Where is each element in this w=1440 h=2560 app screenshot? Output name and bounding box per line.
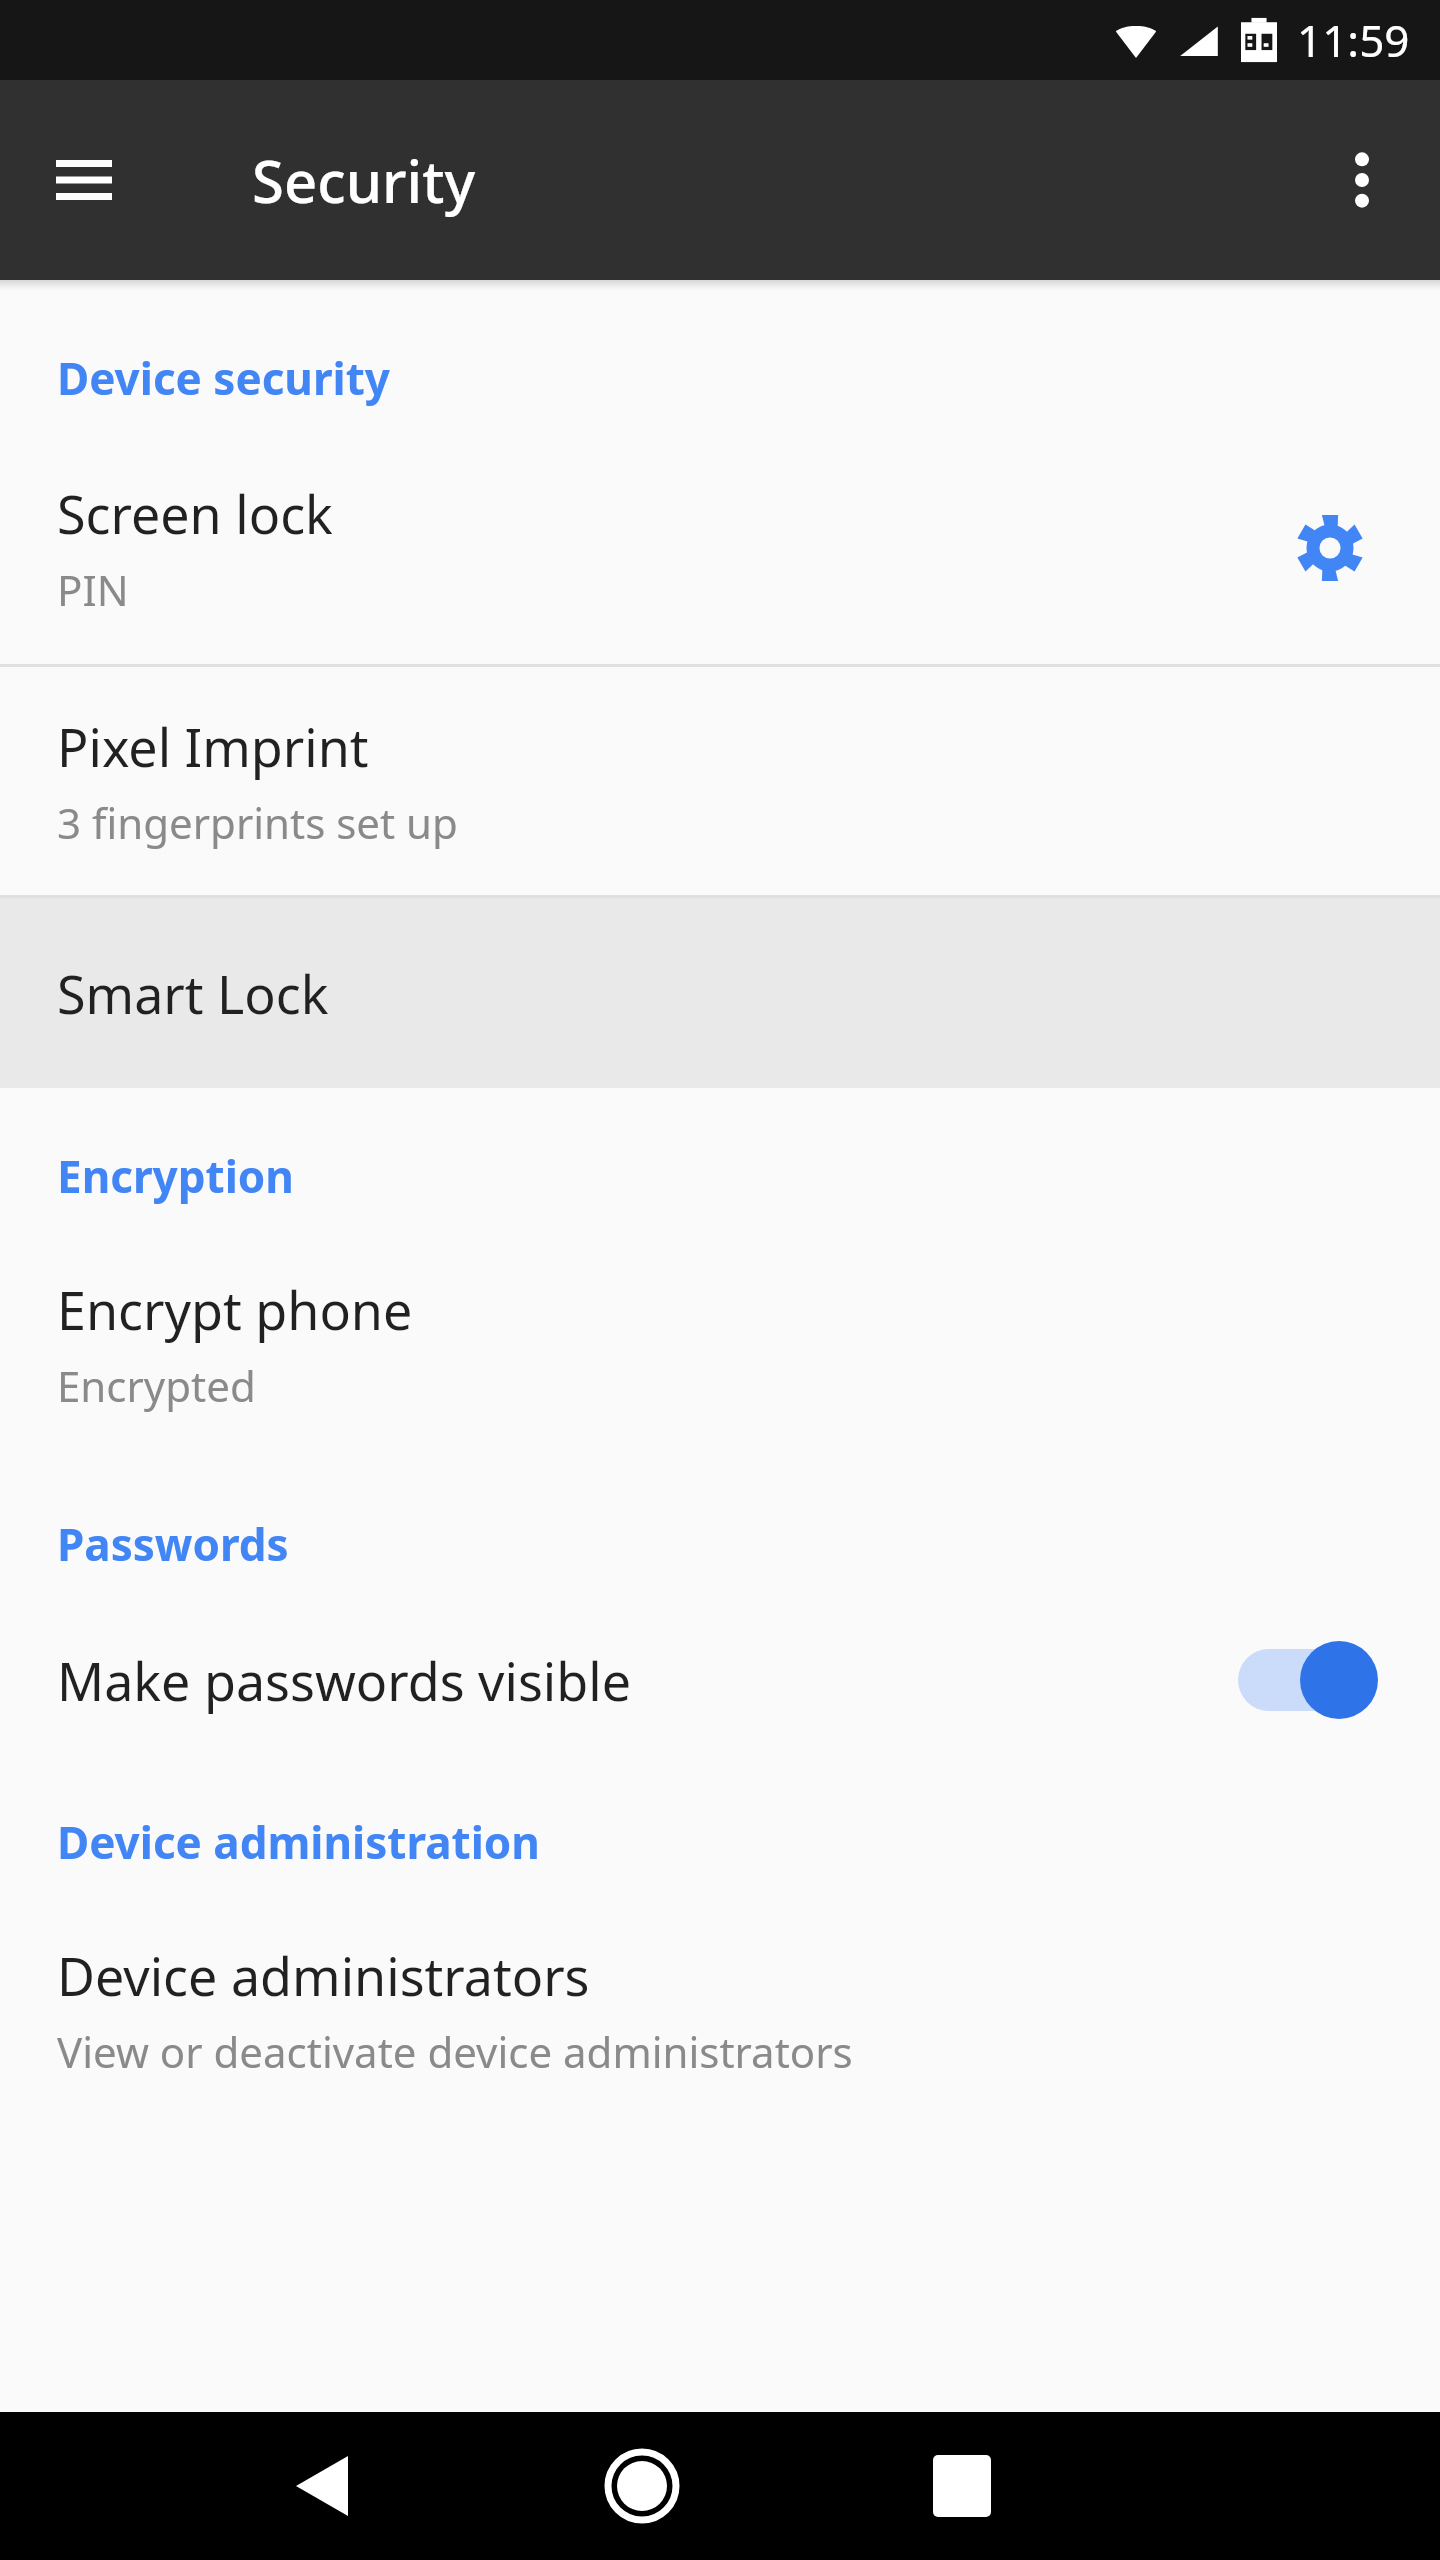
button[interactable]: Device administrators <box>0 1896 1440 2124</box>
button[interactable]: Encrypt phone <box>0 1230 1440 1458</box>
staticText: Encrypted <box>57 1357 256 1414</box>
button[interactable]: Smart Lock <box>0 898 1440 1088</box>
staticText: View or deactivate device administrators <box>57 2023 853 2080</box>
staticText: Smart Lock <box>57 958 329 1029</box>
staticText: Make passwords visible <box>57 1645 631 1716</box>
staticText: Screen lock <box>57 478 333 549</box>
staticText: Encrypt phone <box>57 1274 413 1345</box>
button[interactable]: Open navigation drawer <box>36 132 132 228</box>
button[interactable]: Make passwords visible toggle <box>1238 1635 1378 1725</box>
button[interactable]: Make passwords visible <box>0 1598 1440 1762</box>
staticText: Pixel Imprint <box>57 711 369 782</box>
staticText: Device administrators <box>57 1940 590 2011</box>
staticText: 11:59 <box>1297 10 1410 70</box>
button[interactable]: Screen lock settings <box>1270 488 1390 608</box>
staticText: Passwords <box>57 1514 289 1574</box>
staticText: 3 fingerprints set up <box>57 794 458 851</box>
button[interactable]: Pixel Imprint <box>0 667 1440 895</box>
button[interactable]: More options <box>1314 132 1410 228</box>
staticText: Encryption <box>57 1146 294 1206</box>
staticText: Device security <box>57 348 390 408</box>
button[interactable]: Recent apps <box>872 2412 1052 2560</box>
staticText: Security <box>252 141 476 220</box>
button[interactable]: Back <box>232 2412 412 2560</box>
button[interactable]: Home <box>552 2412 732 2560</box>
staticText: Device administration <box>57 1812 540 1872</box>
staticText: PIN <box>57 561 129 618</box>
button[interactable]: Screen lock <box>0 432 1440 664</box>
